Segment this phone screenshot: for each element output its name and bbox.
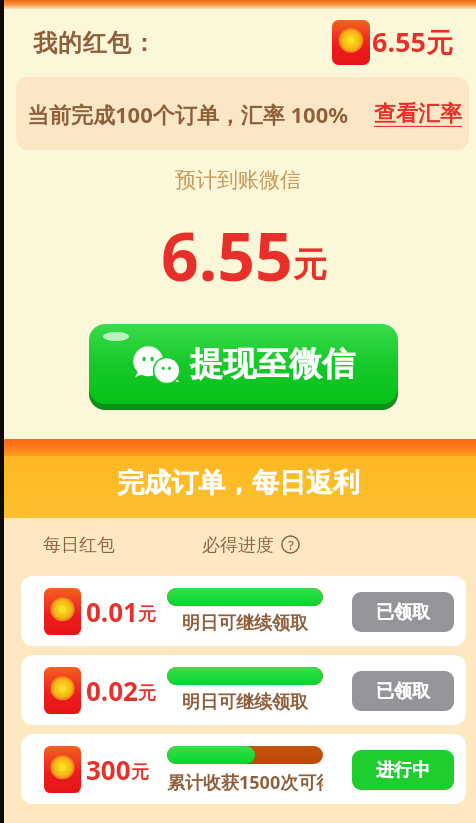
- staticText: 元: [293, 243, 327, 286]
- staticText: 累计收获1500次可得: [167, 770, 323, 795]
- staticText: 元: [131, 761, 149, 784]
- button[interactable]: Help: [281, 535, 300, 554]
- button[interactable]: 进行中: [352, 750, 454, 790]
- button[interactable]: 查看汇率: [374, 100, 462, 128]
- staticText: 6.55元: [372, 23, 453, 60]
- button[interactable]: 300: [21, 734, 466, 804]
- staticText: 进行中: [376, 759, 430, 782]
- staticText: 已领取: [376, 601, 430, 624]
- staticText: 0.02: [86, 673, 138, 708]
- staticText: 提现至微信: [190, 343, 355, 385]
- staticText: 明日可继续领取: [182, 612, 308, 635]
- staticText: 元: [138, 603, 156, 626]
- staticText: 我的红包：: [33, 28, 156, 58]
- button[interactable]: 提现至微信: [89, 324, 398, 404]
- staticText: 预计到账微信: [0, 167, 476, 193]
- button[interactable]: 已领取: [352, 671, 454, 711]
- staticText: 必得进度: [202, 534, 274, 557]
- staticText: 6.55: [161, 210, 293, 300]
- staticText: 已领取: [376, 680, 430, 703]
- button[interactable]: 已领取: [352, 592, 454, 632]
- staticText: 查看汇率: [374, 100, 462, 128]
- staticText: ?: [288, 536, 294, 554]
- staticText: 每日红包: [43, 534, 115, 557]
- staticText: 0.01: [86, 594, 138, 629]
- button[interactable]: 0.01: [21, 576, 466, 646]
- staticText: 元: [138, 682, 156, 705]
- staticText: 当前完成100个订单，汇率 100%: [27, 99, 349, 129]
- button[interactable]: 0.02: [21, 655, 466, 725]
- staticText: 明日可继续领取: [182, 691, 308, 714]
- staticText: 300: [86, 752, 131, 787]
- staticText: 完成订单，每日返利: [117, 466, 360, 500]
